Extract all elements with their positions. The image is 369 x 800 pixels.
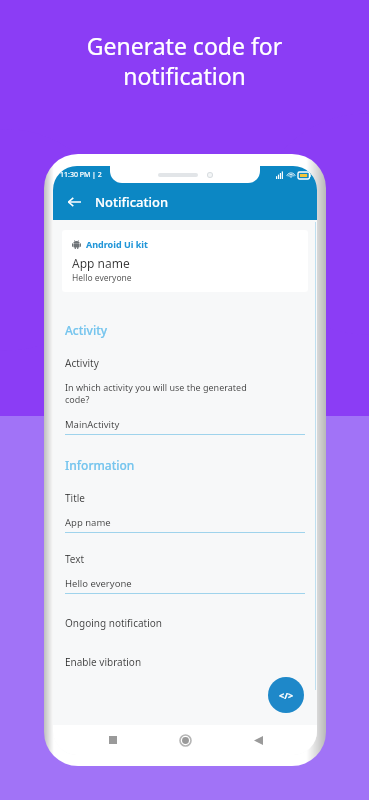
button[interactable]: Ongoing notification (65, 612, 305, 634)
button[interactable]: MainActivity (65, 418, 305, 435)
staticText: MainActivity (65, 418, 120, 431)
staticText: Activity (65, 356, 99, 370)
staticText: 11:30 PM | 2 (60, 170, 102, 180)
button[interactable]: Hello everyone (65, 577, 305, 594)
staticText: Title (65, 491, 85, 505)
staticText: Activity (65, 322, 108, 338)
staticText: Information (65, 457, 135, 473)
staticText: App name (65, 516, 111, 529)
button[interactable]: Home (172, 727, 198, 753)
staticText: Ongoing notification (65, 616, 162, 630)
staticText: </> (279, 689, 294, 701)
staticText: Enable vibration (65, 655, 142, 669)
staticText: App name (72, 255, 130, 271)
staticText: Notification (95, 193, 169, 211)
button[interactable]: Generate code (268, 677, 304, 713)
staticText: In which activity you will use the gener… (65, 381, 247, 406)
staticText: Android Ui kit (86, 238, 148, 250)
staticText: Text (65, 552, 85, 566)
button[interactable]: Back (245, 727, 271, 753)
staticText: Hello everyone (65, 577, 132, 590)
button[interactable]: App name (65, 516, 305, 533)
button[interactable]: Recents (100, 727, 126, 753)
button[interactable]: Enable vibration (65, 651, 305, 673)
staticText: Generate code for notification (0, 30, 369, 91)
button[interactable]: Android Ui kit (62, 230, 308, 292)
button[interactable]: Back (61, 189, 87, 215)
staticText: Hello everyone (72, 272, 132, 284)
